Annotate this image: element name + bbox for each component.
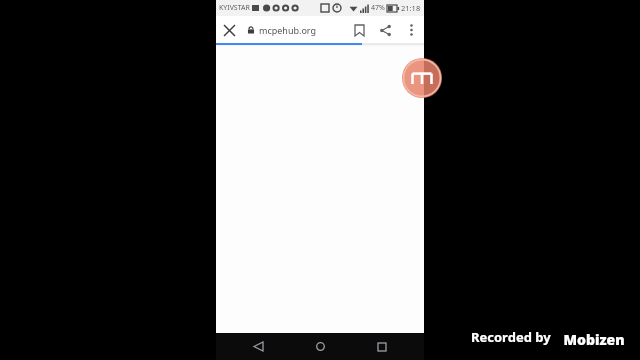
button[interactable]: Share xyxy=(372,17,398,43)
button[interactable]: Back xyxy=(238,333,278,360)
button[interactable]: mcpehub.org xyxy=(242,24,346,36)
staticText: mcpehub.org xyxy=(259,24,317,36)
staticText: 47% xyxy=(371,3,385,13)
staticText: 21:18 xyxy=(401,3,421,13)
button[interactable]: More options xyxy=(398,17,424,43)
button[interactable]: Bookmark xyxy=(346,17,372,43)
staticText: KYIVSTAR xyxy=(219,3,250,13)
staticText: Recorded by xyxy=(471,328,551,346)
button[interactable]: Home xyxy=(300,333,340,360)
button[interactable]: Close xyxy=(216,17,242,43)
button[interactable]: Recent apps xyxy=(362,333,402,360)
staticText: Mobizen xyxy=(563,330,625,345)
